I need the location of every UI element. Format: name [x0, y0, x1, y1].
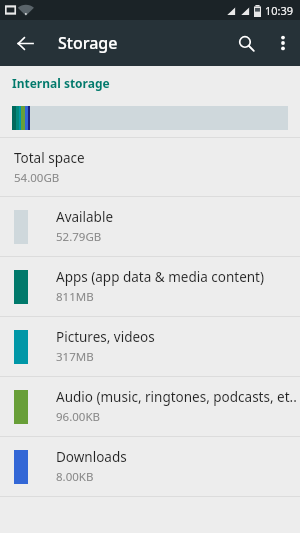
- button[interactable]: Downloads: [0, 437, 300, 496]
- staticText: Storage: [58, 32, 118, 54]
- button[interactable]: More options: [266, 26, 300, 60]
- button[interactable]: Search: [226, 23, 266, 63]
- staticText: 811MB: [56, 289, 94, 305]
- button[interactable]: Back: [7, 25, 43, 61]
- staticText: Available: [56, 208, 113, 226]
- button[interactable]: Total space: [0, 138, 300, 196]
- staticText: Apps (app data & media content): [56, 268, 265, 286]
- button[interactable]: Audio (music, ringtones, podcasts, et..: [0, 377, 300, 436]
- staticText: Internal storage: [12, 75, 110, 91]
- staticText: 317MB: [56, 349, 94, 365]
- button[interactable]: Available: [0, 197, 300, 256]
- staticText: Pictures, videos: [56, 328, 155, 346]
- staticText: 96.00KB: [56, 409, 100, 425]
- button[interactable]: Apps (app data & media content): [0, 257, 300, 316]
- button[interactable]: Pictures, videos: [0, 317, 300, 376]
- staticText: Total space: [14, 149, 85, 167]
- staticText: 10:39: [265, 3, 294, 18]
- staticText: 52.79GB: [56, 229, 102, 245]
- staticText: Audio (music, ringtones, podcasts, et..: [56, 388, 297, 406]
- staticText: Downloads: [56, 448, 127, 466]
- staticText: 8.00KB: [56, 469, 94, 485]
- staticText: 54.00GB: [14, 170, 60, 186]
